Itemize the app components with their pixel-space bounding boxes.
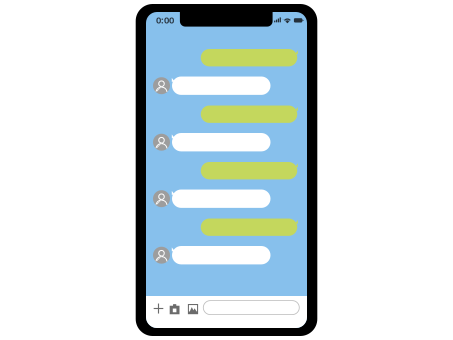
button[interactable]: Message field [203, 301, 299, 315]
button[interactable]: Photo library [185, 300, 201, 318]
button[interactable]: Add attachment [150, 299, 166, 317]
staticText: 0:00 [156, 14, 174, 26]
button[interactable]: Camera [167, 300, 183, 318]
